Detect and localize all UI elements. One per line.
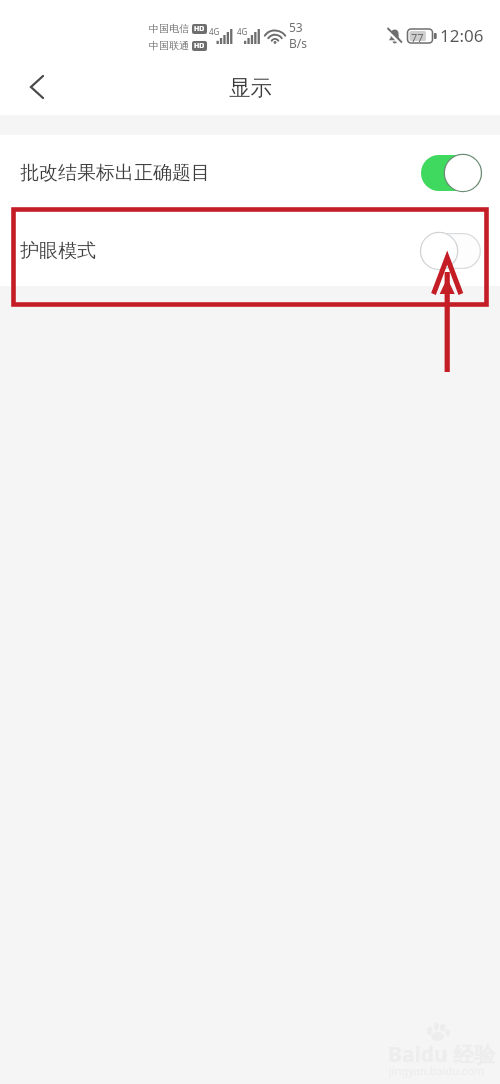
staticText: 4G [237,26,248,37]
button[interactable]: 批改结果标出正确题目 [0,135,500,211]
staticText: 中国联通 [149,39,189,52]
button[interactable]: Switch on [421,153,481,193]
button[interactable]: Switch off [421,231,481,271]
staticText: 77 [411,30,424,45]
button[interactable]: Back [0,58,74,115]
staticText: 显示 [229,74,272,101]
staticText: 批改结果标出正确题目 [20,161,210,185]
staticText: 53 [289,19,303,35]
staticText: 护眼模式 [20,239,96,263]
staticText: 4G [209,26,220,37]
staticText: B/s [289,35,308,51]
button[interactable]: 护眼模式 [0,211,500,286]
staticText: 中国电信 [149,22,189,35]
staticText: Baidu 经验 [388,1040,496,1069]
staticText: 12:06 [440,24,484,47]
staticText: HD [194,24,205,34]
staticText: HD [194,41,205,51]
